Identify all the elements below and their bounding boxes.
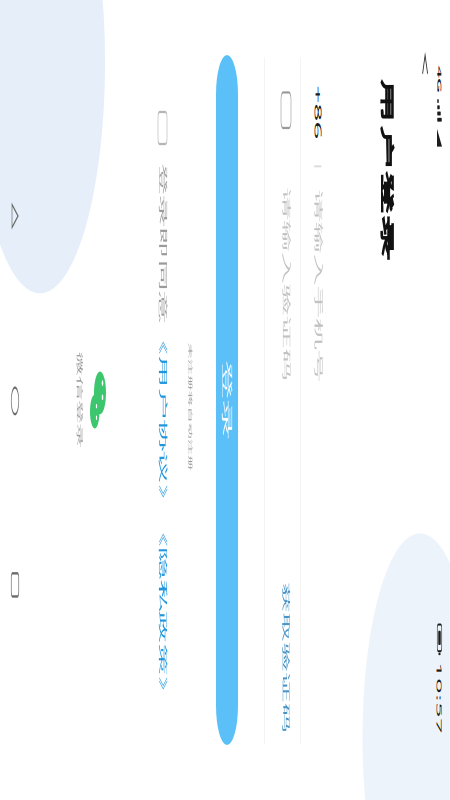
staticText: 请输入手机号 xyxy=(95,224,191,244)
staticText: 《用户协议》 xyxy=(162,500,258,520)
button[interactable]: 《用户协议》 xyxy=(162,500,258,520)
staticText: 用户登录 xyxy=(39,100,131,127)
staticText: 微信登录 xyxy=(176,651,224,665)
button[interactable]: 微信登录 xyxy=(173,610,227,665)
staticText: 未注册将自动注册 xyxy=(172,457,236,467)
staticText: 请输入验证码 xyxy=(94,281,190,301)
button[interactable]: 获取验证码 xyxy=(292,283,367,301)
staticText: 登录 xyxy=(180,384,220,409)
staticText: 获取验证码 xyxy=(292,283,367,301)
button[interactable]: 登录 xyxy=(28,377,372,416)
